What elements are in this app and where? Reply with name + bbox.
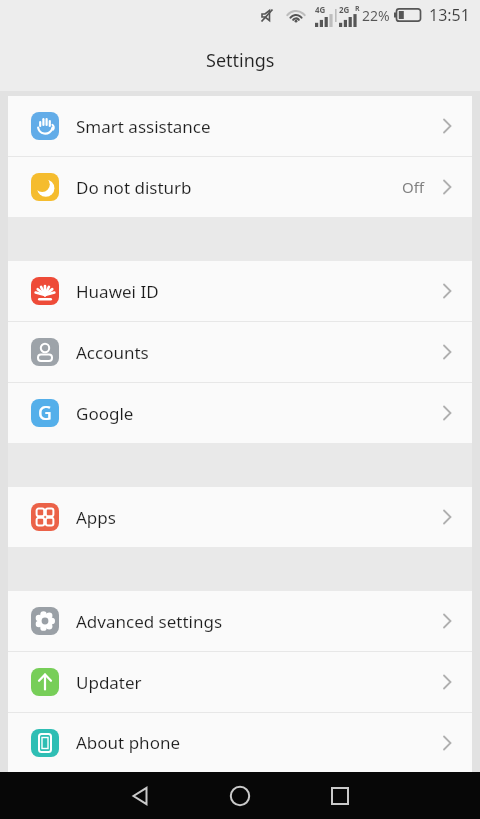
button[interactable]: Updater xyxy=(8,652,472,712)
staticText: 22% xyxy=(362,6,390,25)
staticText: G xyxy=(38,400,52,426)
staticText: Settings xyxy=(206,48,275,73)
button[interactable]: Accounts xyxy=(8,322,472,382)
staticText: Updater xyxy=(76,671,142,694)
staticText: 13:51 xyxy=(429,4,470,26)
staticText: Smart assistance xyxy=(76,115,211,138)
staticText: 2G xyxy=(339,4,350,15)
staticText: Google xyxy=(76,402,134,425)
staticText: Apps xyxy=(76,506,116,529)
button[interactable] xyxy=(210,772,270,819)
staticText: Huawei ID xyxy=(76,280,159,303)
staticText: Accounts xyxy=(76,341,149,364)
button[interactable]: G xyxy=(8,383,472,443)
staticText: Do not disturb xyxy=(76,176,192,199)
staticText: Off xyxy=(402,177,425,197)
button[interactable]: Smart assistance xyxy=(8,96,472,156)
button[interactable] xyxy=(310,772,370,819)
button[interactable]: Advanced settings xyxy=(8,591,472,651)
button[interactable]: Apps xyxy=(8,487,472,547)
staticText: R xyxy=(355,4,360,14)
button[interactable]: Do not disturb xyxy=(8,157,472,217)
button[interactable]: About phone xyxy=(8,713,472,772)
button[interactable] xyxy=(110,772,170,819)
staticText: 4G xyxy=(315,4,326,15)
button[interactable]: Huawei ID xyxy=(8,261,472,321)
staticText: Advanced settings xyxy=(76,610,223,633)
staticText: About phone xyxy=(76,731,181,754)
